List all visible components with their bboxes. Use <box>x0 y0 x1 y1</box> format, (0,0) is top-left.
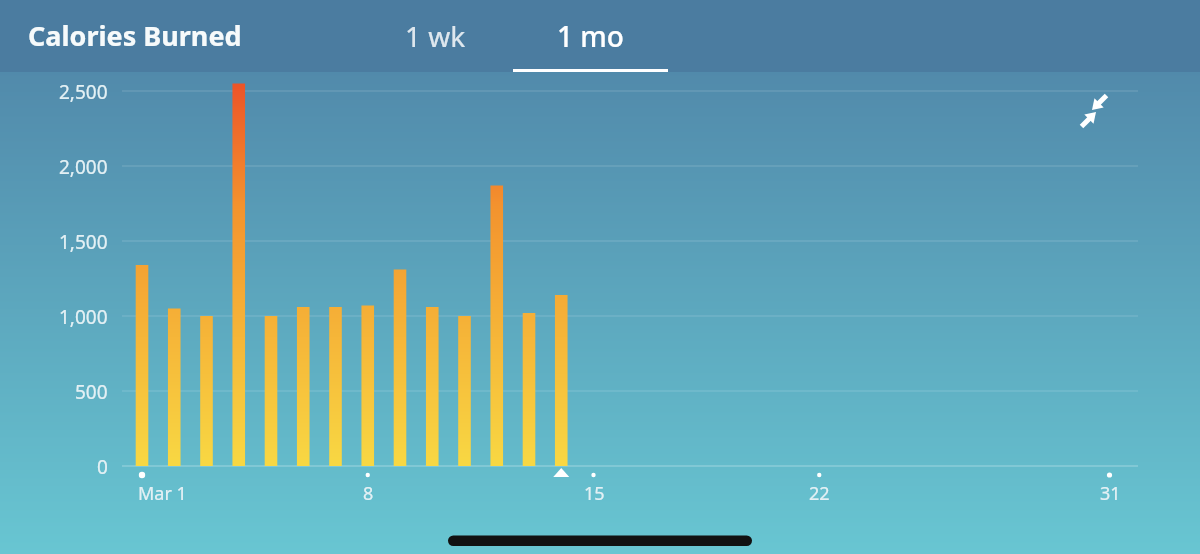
staticText: 1,500 <box>59 229 108 253</box>
staticText: Mar 1 <box>138 481 187 506</box>
staticText: 1,000 <box>59 304 108 328</box>
button[interactable] <box>1070 86 1118 134</box>
staticText: 0 <box>97 454 108 478</box>
staticText: 500 <box>75 379 108 403</box>
button[interactable]: 1 mo <box>513 0 668 72</box>
staticText: 8 <box>363 481 374 505</box>
staticText: 2,500 <box>59 79 108 103</box>
staticText: 1 mo <box>557 17 624 55</box>
staticText: 22 <box>809 481 830 505</box>
staticText: 2,000 <box>59 154 108 178</box>
staticText: 31 <box>1100 481 1121 505</box>
staticText: 1 wk <box>405 17 466 55</box>
button[interactable]: 1 wk <box>358 0 513 72</box>
staticText: 15 <box>584 481 605 505</box>
staticText: Calories Burned <box>28 17 242 54</box>
